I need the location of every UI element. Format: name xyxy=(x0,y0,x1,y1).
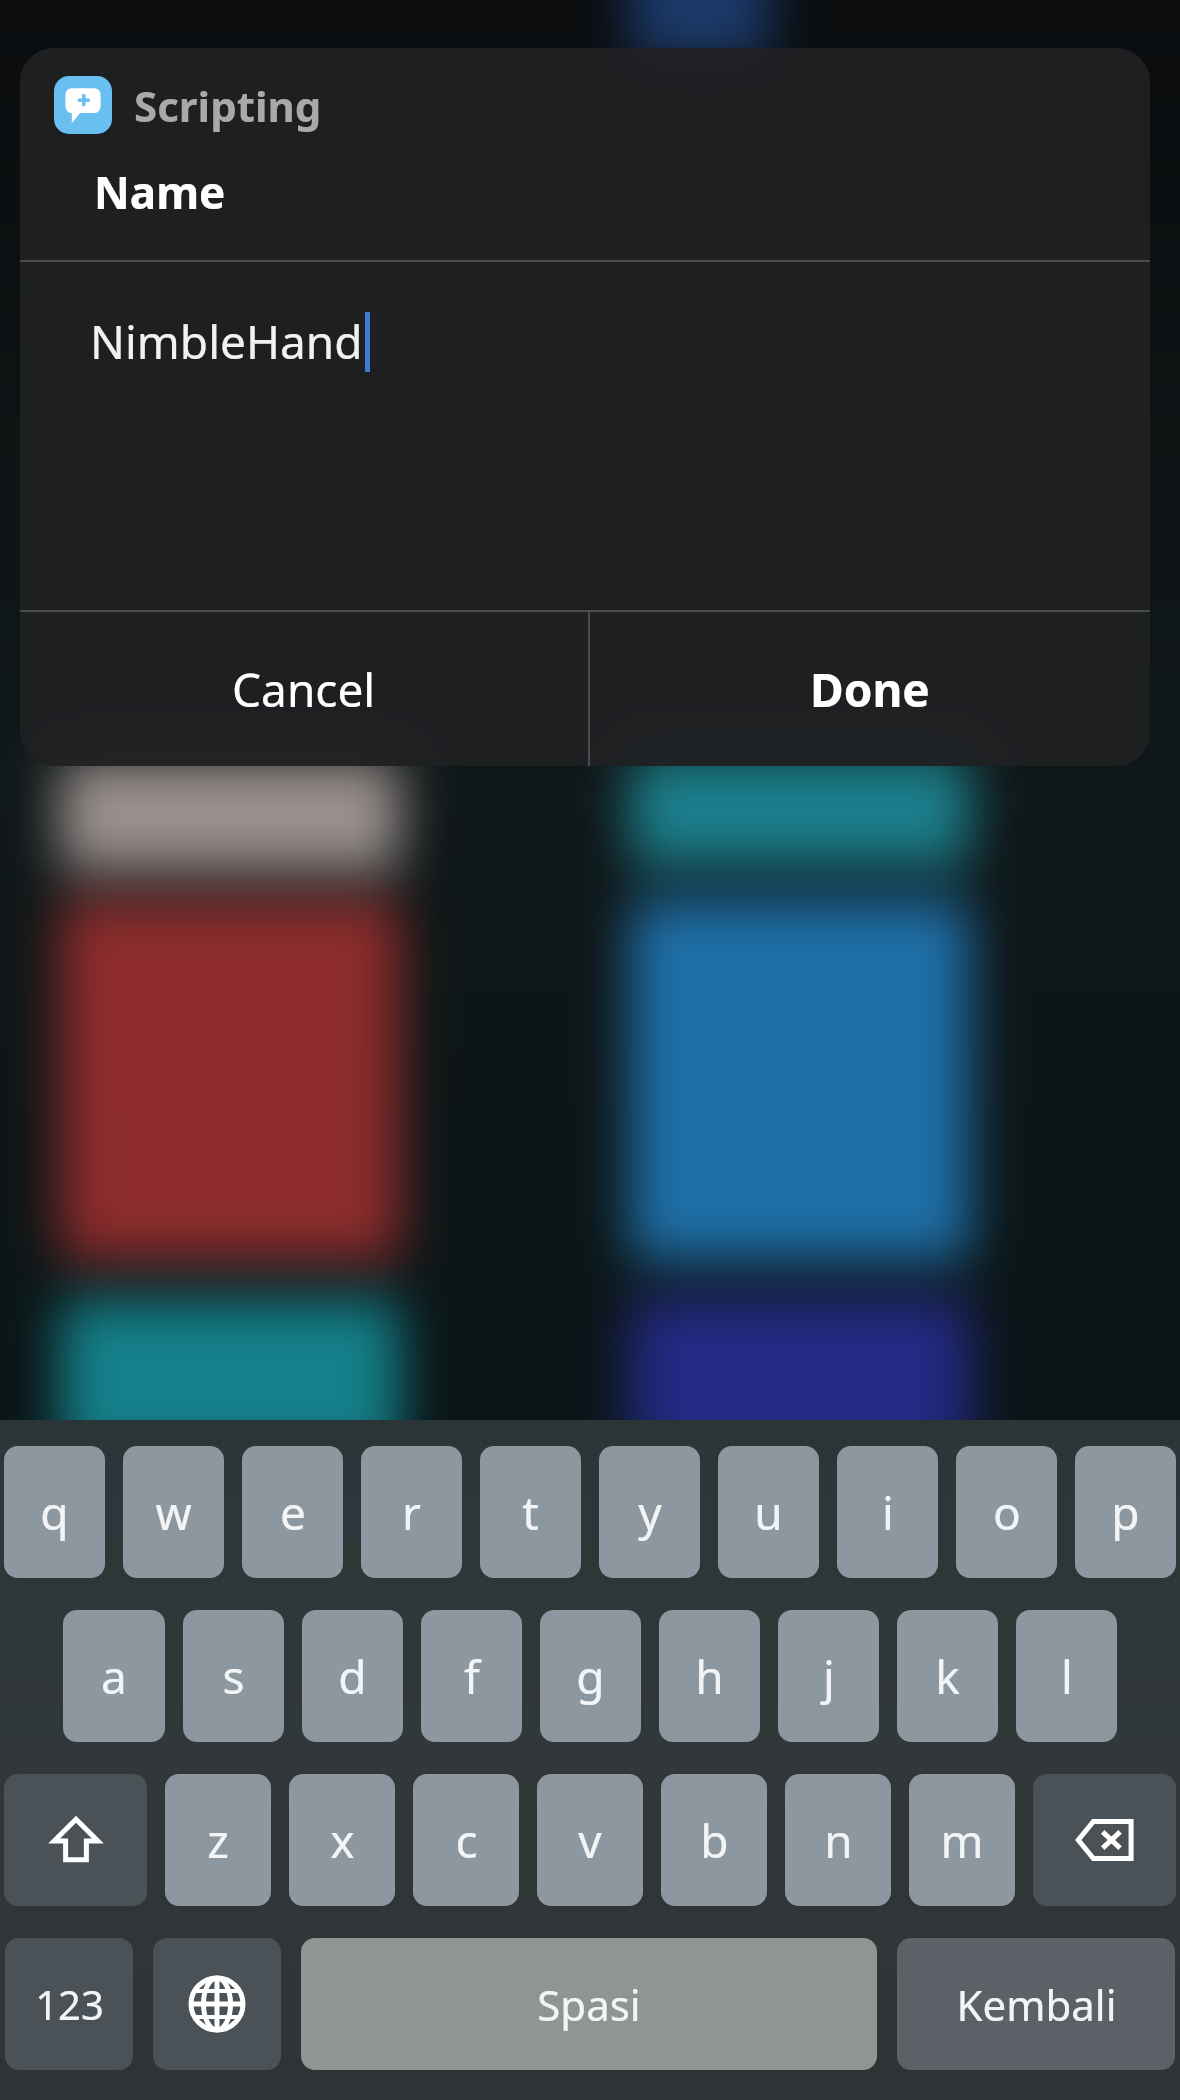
button[interactable]: h xyxy=(659,1610,760,1742)
staticText: Spasi xyxy=(537,1976,641,2033)
staticText: p xyxy=(1111,1481,1140,1544)
staticText: b xyxy=(700,1809,729,1872)
staticText: f xyxy=(464,1645,480,1708)
button[interactable]: Spasi xyxy=(301,1938,877,2070)
staticText: Kembali xyxy=(956,1976,1117,2033)
button[interactable]: s xyxy=(183,1610,284,1742)
staticText: r xyxy=(402,1481,421,1544)
button[interactable]: m xyxy=(909,1774,1015,1906)
button[interactable]: r xyxy=(361,1446,462,1578)
button[interactable]: f xyxy=(421,1610,522,1742)
staticText: l xyxy=(1061,1645,1073,1708)
button[interactable]: o xyxy=(956,1446,1057,1578)
staticText: u xyxy=(754,1481,783,1544)
staticText: NimbleHand xyxy=(90,310,363,373)
button[interactable]: w xyxy=(123,1446,224,1578)
button[interactable]: p xyxy=(1075,1446,1176,1578)
button[interactable]: d xyxy=(302,1610,403,1742)
staticText: d xyxy=(338,1645,367,1708)
button[interactable]: e xyxy=(242,1446,343,1578)
button[interactable]: j xyxy=(778,1610,879,1742)
staticText: Done xyxy=(810,658,930,721)
staticText: c xyxy=(455,1809,478,1872)
staticText: x xyxy=(330,1809,355,1872)
staticText: g xyxy=(576,1645,605,1708)
staticText: e xyxy=(280,1481,306,1544)
staticText: Scripting xyxy=(134,77,322,134)
button[interactable]: Shift xyxy=(4,1774,147,1906)
staticText: s xyxy=(222,1645,245,1708)
staticText: n xyxy=(824,1809,853,1872)
staticText: 123 xyxy=(35,1977,104,2031)
button[interactable]: 123 xyxy=(5,1938,133,2070)
staticText: y xyxy=(638,1481,662,1544)
staticText: j xyxy=(823,1645,835,1708)
button[interactable]: Done xyxy=(590,612,1150,766)
button[interactable]: a xyxy=(63,1610,165,1742)
button[interactable]: l xyxy=(1016,1610,1117,1742)
staticText: Cancel xyxy=(232,658,376,721)
staticText: k xyxy=(935,1645,960,1708)
button[interactable]: g xyxy=(540,1610,641,1742)
button[interactable]: t xyxy=(480,1446,581,1578)
button[interactable]: z xyxy=(165,1774,271,1906)
staticText: h xyxy=(695,1645,724,1708)
staticText: t xyxy=(522,1481,539,1544)
staticText: w xyxy=(155,1481,192,1544)
button[interactable]: k xyxy=(897,1610,998,1742)
button[interactable]: Change language xyxy=(153,1938,281,2070)
button[interactable]: u xyxy=(718,1446,819,1578)
button[interactable]: q xyxy=(4,1446,105,1578)
button[interactable]: Kembali xyxy=(897,1938,1175,2070)
staticText: a xyxy=(101,1645,127,1708)
staticText: z xyxy=(207,1809,229,1872)
button[interactable]: n xyxy=(785,1774,891,1906)
staticText: v xyxy=(578,1809,602,1872)
button[interactable]: c xyxy=(413,1774,519,1906)
button[interactable]: b xyxy=(661,1774,767,1906)
staticText: i xyxy=(882,1481,894,1544)
button[interactable]: v xyxy=(537,1774,643,1906)
button[interactable]: x xyxy=(289,1774,395,1906)
staticText: m xyxy=(940,1809,984,1872)
button[interactable]: Cancel xyxy=(20,612,588,766)
staticText: o xyxy=(993,1481,1021,1544)
button[interactable]: i xyxy=(837,1446,938,1578)
staticText: Name xyxy=(94,162,226,222)
button[interactable]: Backspace xyxy=(1033,1774,1176,1906)
button[interactable]: y xyxy=(599,1446,700,1578)
staticText: q xyxy=(40,1481,69,1544)
